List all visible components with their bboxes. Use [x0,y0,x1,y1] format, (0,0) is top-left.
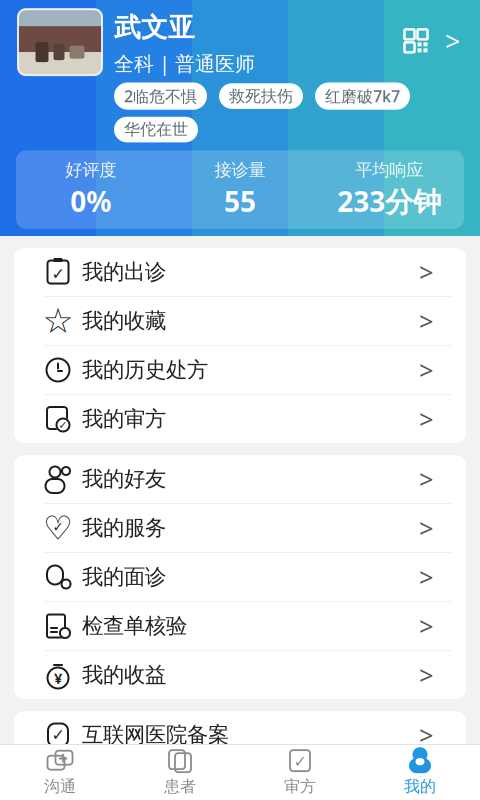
staticText: 我的面诊 [82,564,166,590]
button[interactable]: ¥ [14,651,466,699]
button[interactable]: ✓ [240,745,360,800]
staticText: 233分钟 [337,183,441,220]
staticText: 好评度 [65,159,116,181]
button[interactable]: ✓ [14,248,466,296]
staticText: 沟通 [44,777,76,796]
button[interactable]: ☆ [14,297,466,345]
staticText: > [419,658,433,692]
button[interactable]: 🛡 [14,711,466,759]
staticText: 我的服务 [82,515,166,541]
staticText: 平均响应 [355,159,423,181]
staticText: > [419,353,433,387]
button[interactable]: 患者 [120,745,240,800]
staticText: ¥ [54,668,62,688]
staticText: 全科 | 普通医师 [114,50,255,76]
staticText: 检查单核验 [82,613,187,639]
staticText: 我的收藏 [82,308,166,334]
button[interactable]: 我的面诊 [14,553,466,601]
staticText: ✓ [293,753,306,771]
button[interactable]: 扫码 / 个人资料 [403,0,480,59]
staticText: 我的好友 [82,466,166,492]
staticText: 我的审方 [82,406,166,432]
button[interactable]: 我的好友 [14,455,466,503]
button[interactable]: 检查单核验 [14,602,466,650]
staticText: ♡ [43,509,73,547]
button[interactable]: 我的历史处方 [14,346,466,394]
staticText: ✓ [51,726,64,744]
staticText: 患者 [164,777,196,796]
staticText: 武文亚 [114,11,195,44]
button[interactable]: + [0,745,120,800]
button[interactable]: 我的 [360,745,480,800]
staticText: 红磨破7k7 [325,85,400,107]
staticText: ✓ [52,519,63,534]
staticText: 0% [70,183,111,220]
staticText: 我的出诊 [82,259,166,285]
staticText: 救死扶伤 [229,86,293,106]
staticText: ☆ [42,301,73,341]
staticText: 互联网医院备案 [82,722,229,748]
staticText: > [419,462,433,496]
button[interactable]: ✓ [14,395,466,443]
staticText: 55 [224,183,256,220]
staticText: + [58,746,68,769]
staticText: 审方 [284,777,316,796]
staticText: > [419,402,433,436]
staticText: ✓ [58,419,67,431]
staticText: > [419,718,433,752]
staticText: 我的历史处方 [82,357,208,383]
staticText: 接诊量 [214,159,265,181]
staticText: > [419,511,433,545]
staticText: > [445,23,460,59]
staticText: 华佗在世 [124,120,188,139]
button[interactable]: ♡ [14,504,466,552]
staticText: 我的收益 [82,662,166,688]
staticText: > [419,255,433,289]
staticText: > [419,560,433,594]
staticText: ✓ [51,265,64,283]
staticText: > [419,304,433,338]
staticText: > [419,609,433,643]
staticText: 我的 [404,777,436,796]
staticText: 2临危不惧 [124,85,197,107]
